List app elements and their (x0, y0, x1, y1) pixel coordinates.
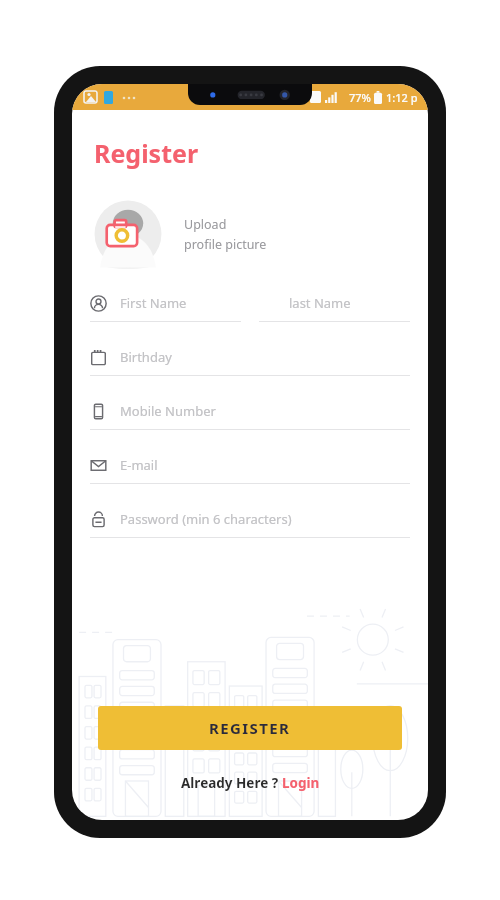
staticText: last Name (289, 294, 351, 312)
staticText: 1:12 p (386, 90, 418, 105)
staticText: Mobile Number (120, 402, 216, 420)
staticText: profile picture (184, 236, 267, 253)
button[interactable]: Register (94, 136, 199, 170)
staticText: Upload (184, 216, 227, 233)
staticText: Birthday (120, 348, 172, 366)
button[interactable]: Upload profile picture (90, 196, 267, 272)
staticText: REGISTER (209, 718, 291, 738)
staticText: Already Here ? (181, 774, 282, 792)
button[interactable]: Mobile Number (90, 400, 410, 430)
button[interactable]: First Name (90, 292, 241, 322)
button[interactable]: Birthday (90, 346, 410, 376)
staticText: 77% (349, 90, 371, 105)
button[interactable]: Password (min 6 characters) (90, 508, 410, 538)
button[interactable]: E-mail (90, 454, 410, 484)
staticText: Login (282, 774, 320, 792)
staticText: Password (min 6 characters) (120, 510, 292, 528)
button[interactable]: last Name (259, 292, 410, 322)
staticText: Register (94, 136, 199, 170)
staticText: First Name (120, 294, 187, 312)
button[interactable]: Login (282, 774, 320, 792)
button[interactable]: REGISTER (98, 706, 402, 750)
staticText: E-mail (120, 456, 158, 474)
